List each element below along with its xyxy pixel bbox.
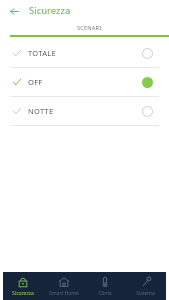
button[interactable]: Sicurezza (3, 272, 43, 300)
button[interactable]: NOTTE (0, 97, 169, 125)
staticText: SCENARI (77, 24, 102, 32)
button[interactable]: Sistema (125, 272, 166, 300)
button[interactable]: OFF (0, 68, 169, 96)
staticText: Sicurezza (29, 4, 71, 17)
staticText: OFF (28, 77, 43, 87)
button[interactable]: SCENARI (10, 21, 169, 39)
staticText: Sistema (136, 290, 155, 297)
staticText: Sicurezza (12, 290, 34, 297)
button[interactable]: Clima (84, 272, 125, 300)
staticText: Clima (98, 290, 112, 297)
button[interactable]: TOTALE (0, 39, 169, 67)
staticText: TOTALE (28, 48, 56, 58)
staticText: NOTTE (28, 106, 54, 116)
button[interactable]: Smart Home (43, 272, 84, 300)
staticText: Smart Home (49, 290, 79, 297)
button[interactable]: Back (6, 3, 22, 19)
